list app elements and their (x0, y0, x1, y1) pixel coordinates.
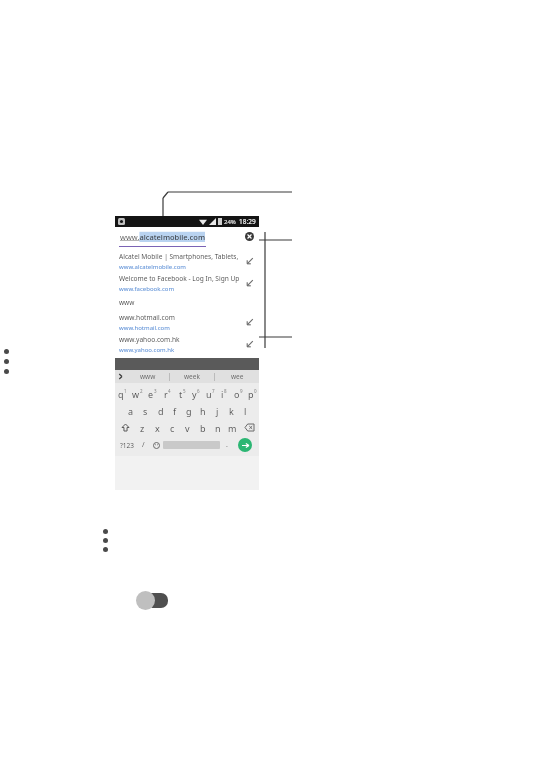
staticText: q (118, 388, 124, 400)
button[interactable]: More suggestions (115, 370, 126, 383)
staticText: 2 (140, 388, 143, 394)
button[interactable]: r (160, 385, 175, 402)
button[interactable]: week (170, 370, 214, 383)
staticText: www (119, 298, 135, 307)
staticText: y (192, 388, 197, 400)
staticText: d (158, 405, 164, 417)
staticText: a (128, 405, 134, 417)
staticText: w (132, 388, 140, 400)
button[interactable]: Clear (245, 232, 254, 241)
button[interactable]: o (231, 385, 245, 402)
staticText: 24% (224, 218, 236, 226)
button[interactable]: www.alcatelmobile.com (115, 227, 259, 246)
staticText: l (244, 405, 247, 417)
staticText: wee (231, 372, 244, 381)
staticText: www.alcatelmobile.com (120, 232, 205, 242)
staticText: 6 (197, 388, 200, 394)
staticText: www.hotmail.com (119, 324, 170, 332)
button[interactable]: Insert suggestion (245, 339, 255, 349)
staticText: b (200, 422, 206, 434)
staticText: v (185, 422, 190, 434)
button[interactable]: w (130, 385, 145, 402)
button[interactable]: n (210, 419, 225, 436)
button[interactable]: www (126, 370, 169, 383)
staticText: ?123 (120, 441, 134, 450)
button[interactable]: h (196, 402, 210, 419)
staticText: g (186, 405, 192, 417)
button[interactable]: z (135, 419, 150, 436)
button[interactable]: Emoji (150, 436, 163, 454)
button[interactable]: Shift (115, 419, 135, 436)
staticText: 9 (240, 388, 243, 394)
button[interactable]: s (138, 402, 153, 419)
staticText: 7 (212, 388, 215, 394)
button[interactable]: Toggle (136, 590, 168, 610)
staticText: z (140, 422, 145, 434)
button[interactable]: v (180, 419, 195, 436)
button[interactable]: b (195, 419, 210, 436)
staticText: Welcome to Facebook - Log In, Sign Up or… (119, 274, 245, 283)
staticText: www.alcatelmobile.com (119, 263, 186, 271)
staticText: 1 (124, 388, 127, 394)
button[interactable]: e (145, 385, 160, 402)
button[interactable]: Insert suggestion (245, 256, 255, 266)
staticText: www (140, 372, 156, 381)
staticText: u (206, 388, 212, 400)
staticText: Alcatel Mobile | Smartphones, Tablets, A… (119, 252, 245, 261)
button[interactable]: m (225, 419, 240, 436)
button[interactable]: u (203, 385, 217, 402)
staticText: 5 (183, 388, 186, 394)
button[interactable]: Alcatel Mobile | Smartphones, Tablets, A… (119, 250, 255, 272)
button[interactable]: t (175, 385, 189, 402)
button[interactable]: www.yahoo.com.hk (119, 333, 255, 355)
staticText: k (229, 405, 234, 417)
staticText: s (143, 405, 148, 417)
button[interactable]: Go (233, 436, 257, 454)
button[interactable]: Insert suggestion (245, 278, 255, 288)
staticText: www.hotmail.com (119, 313, 175, 322)
button[interactable]: www (119, 294, 255, 311)
staticText: www.yahoo.com.hk (119, 335, 180, 344)
staticText: j (216, 405, 219, 417)
button[interactable]: d (153, 402, 168, 419)
button[interactable]: l (238, 402, 252, 419)
button[interactable]: p (245, 385, 259, 402)
staticText: / (142, 440, 145, 450)
staticText: www.yahoo.com.hk (119, 346, 175, 354)
button[interactable]: g (182, 402, 196, 419)
staticText: o (234, 388, 240, 400)
staticText: n (215, 422, 221, 434)
staticText: week (184, 372, 200, 381)
button[interactable]: . (220, 436, 233, 454)
staticText: m (228, 422, 237, 434)
button[interactable]: Insert suggestion (245, 317, 255, 327)
button[interactable]: y (189, 385, 203, 402)
button[interactable]: x (150, 419, 165, 436)
button[interactable]: / (137, 436, 150, 454)
button[interactable]: f (168, 402, 182, 419)
button[interactable]: a (123, 402, 138, 419)
staticText: r (164, 388, 168, 400)
button[interactable]: q (115, 385, 130, 402)
staticText: f (173, 405, 177, 417)
button[interactable]: wee (215, 370, 259, 383)
button[interactable]: www.hotmail.com (119, 311, 255, 333)
button[interactable]: k (224, 402, 238, 419)
staticText: 4 (168, 388, 171, 394)
staticText: www.facebook.com (119, 285, 175, 293)
staticText: 0 (254, 388, 257, 394)
button[interactable]: c (165, 419, 180, 436)
button[interactable]: Backspace (240, 419, 259, 436)
staticText: i (221, 388, 224, 400)
button[interactable]: Welcome to Facebook - Log In, Sign Up or… (119, 272, 255, 294)
staticText: 18:29 (239, 217, 256, 226)
staticText: 3 (154, 388, 157, 394)
staticText: t (179, 388, 183, 400)
button[interactable]: j (210, 402, 224, 419)
staticText: 8 (224, 388, 227, 394)
button[interactable]: i (217, 385, 231, 402)
staticText: . (226, 440, 228, 450)
button[interactable]: ?123 (117, 436, 137, 454)
staticText: h (200, 405, 206, 417)
